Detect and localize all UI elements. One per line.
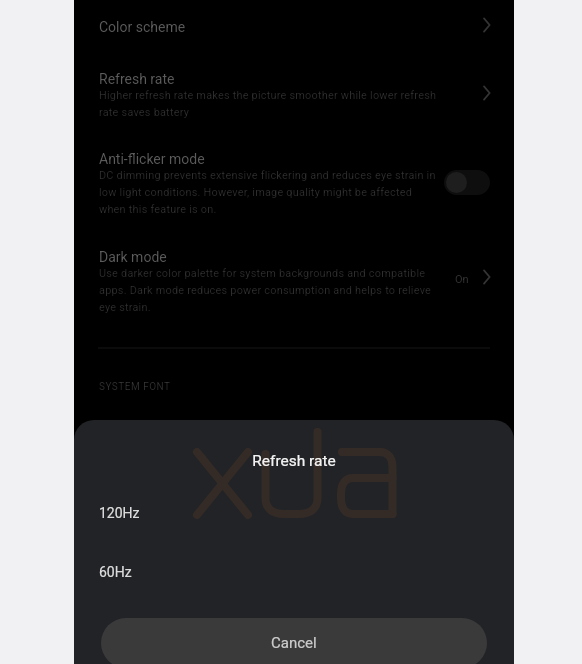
button[interactable]: Refresh rate [74, 62, 514, 143]
button[interactable]: 60Hz [74, 550, 514, 594]
staticText: Use darker color palette for system back… [99, 267, 444, 314]
staticText: Refresh rate [99, 71, 175, 87]
other: Open [480, 84, 496, 102]
button[interactable]: Dark mode [74, 241, 514, 334]
staticText: Color scheme [99, 19, 186, 35]
staticText: Cancel [271, 634, 317, 652]
staticText: 60Hz [99, 564, 132, 580]
staticText: Refresh rate [74, 452, 514, 470]
staticText: Dark mode [99, 249, 167, 265]
button[interactable]: Cancel [101, 618, 487, 664]
other: Open [480, 16, 496, 34]
button[interactable]: Anti-flicker mode toggle [444, 170, 490, 195]
other: Open [480, 268, 496, 286]
staticText: 120Hz [99, 505, 140, 521]
staticText: On [455, 273, 469, 286]
staticText: Higher refresh rate makes the picture sm… [99, 89, 444, 119]
button[interactable]: Color scheme [74, 0, 514, 62]
staticText: SYSTEM FONT [99, 381, 171, 393]
staticText: Anti-flicker mode [99, 151, 205, 167]
button[interactable]: Anti-flicker mode [74, 143, 514, 241]
button[interactable]: 120Hz [74, 491, 514, 535]
staticText: DC dimming prevents extensive flickering… [99, 169, 441, 216]
